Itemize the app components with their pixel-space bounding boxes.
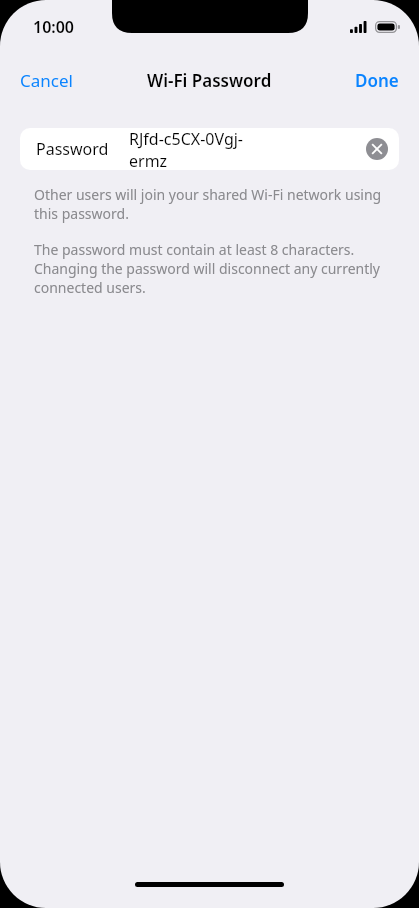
staticText: Other users will join your shared Wi-Fi …: [34, 185, 385, 223]
staticText: The password must contain at least 8 cha…: [34, 240, 385, 297]
button[interactable]: Cancel: [0, 61, 93, 100]
staticText: Wi-Fi Password: [147, 69, 272, 92]
staticText: RJfd-c5CX-0Vgj-ermz: [129, 128, 247, 170]
button[interactable]: Clear text: [366, 138, 388, 160]
staticText: Done: [355, 69, 399, 92]
staticText: Password: [36, 138, 109, 160]
staticText: Cancel: [20, 69, 73, 92]
button[interactable]: Password: [20, 128, 399, 170]
button[interactable]: Done: [335, 61, 419, 100]
staticText: 10:00: [33, 16, 75, 38]
